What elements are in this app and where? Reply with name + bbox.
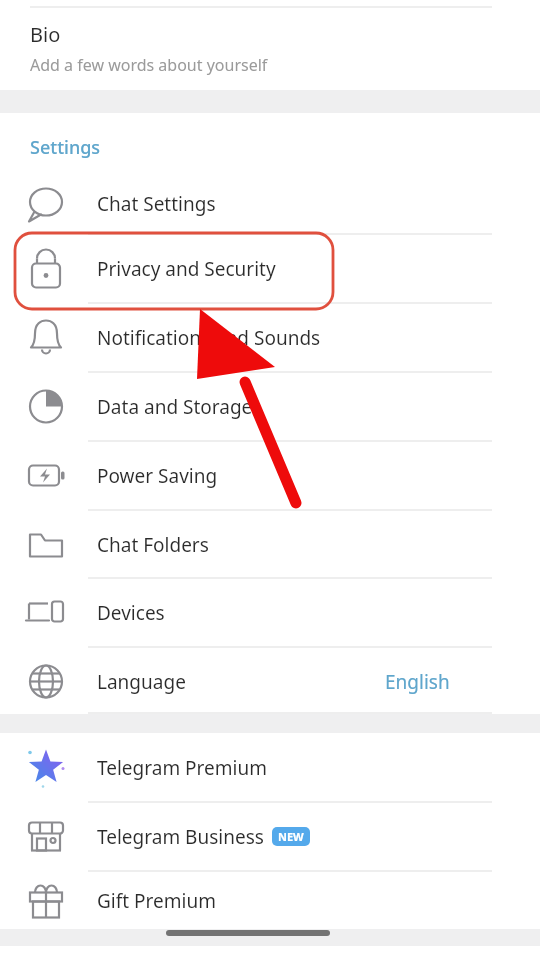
staticText: Devices [97, 600, 165, 626]
button[interactable]: Gift Premium [0, 871, 540, 930]
staticText: Language [97, 669, 186, 695]
button[interactable]: Bio [0, 0, 540, 90]
button[interactable]: Privacy and Security [0, 234, 540, 303]
button[interactable]: Devices [0, 578, 540, 647]
staticText: Privacy and Security [97, 256, 276, 282]
staticText: Chat Folders [97, 532, 209, 558]
button[interactable]: Chat Folders [0, 510, 540, 579]
button[interactable]: Telegram Premium [0, 733, 540, 802]
staticText: Bio [30, 21, 61, 48]
button[interactable]: Power Saving [0, 441, 540, 510]
staticText: English [385, 669, 450, 695]
button[interactable]: Data and Storage [0, 372, 540, 441]
staticText: NEW [278, 829, 304, 844]
staticText: Telegram Premium [97, 755, 267, 781]
button[interactable]: Chat Settings [0, 169, 540, 238]
staticText: Settings [30, 135, 101, 160]
staticText: Chat Settings [97, 191, 216, 217]
staticText: Add a few words about yourself [30, 54, 268, 76]
button[interactable]: Telegram Business [0, 802, 540, 871]
staticText: Telegram Business [97, 824, 264, 850]
button[interactable]: Notifications and Sounds [0, 303, 540, 372]
staticText: Power Saving [97, 463, 218, 489]
staticText: Gift Premium [97, 888, 216, 914]
button[interactable]: Language [0, 647, 540, 716]
staticText: Data and Storage [97, 394, 253, 420]
staticText: Notifications and Sounds [97, 325, 321, 351]
